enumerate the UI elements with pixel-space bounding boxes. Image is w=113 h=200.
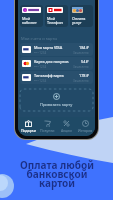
staticText: •••• 1234: [34, 65, 47, 69]
staticText: 178 ₽: [79, 73, 89, 78]
staticText: Мой Телефон: [47, 16, 63, 25]
button[interactable]: Акции: [57, 117, 76, 136]
button[interactable]: Привязать карту: [20, 89, 93, 111]
staticText: Привязать карту: [40, 102, 73, 107]
staticText: •••• 1234: [34, 51, 47, 55]
staticText: Покупки: [40, 128, 55, 133]
staticText: 184 ₽: [79, 45, 89, 50]
button[interactable]: Моя карта VISA: [20, 43, 93, 56]
button[interactable]: Тинькофф карта: [20, 71, 93, 84]
staticText: •••• 1234: [34, 79, 47, 83]
staticText: Мои счета и карты: [21, 36, 58, 41]
staticText: Подарки: [21, 128, 36, 133]
staticText: Зачислено: [73, 65, 89, 69]
staticText: Акции: [61, 128, 72, 133]
staticText: Тинькофф карта: [34, 73, 64, 78]
button[interactable]: Мой Телефон: [45, 5, 68, 27]
staticText: 54 ₽: [81, 59, 89, 64]
button[interactable]: Карта для покупок: [20, 57, 93, 70]
button[interactable]: История: [76, 117, 95, 136]
staticText: Мой кабинет: [22, 16, 37, 25]
staticText: Зачислено: [73, 79, 89, 83]
button[interactable]: Подарки: [18, 117, 38, 136]
staticText: Карта для покупок: [34, 59, 69, 64]
staticText: Оплата услуг: [72, 16, 86, 25]
staticText: Оплата любой банковской картой: [20, 158, 94, 190]
button[interactable]: Покупки: [38, 117, 57, 136]
staticText: Моя карта VISA: [34, 45, 63, 50]
staticText: История: [78, 128, 93, 133]
button[interactable]: Мой кабинет: [20, 5, 43, 27]
staticText: Зачислено: [73, 51, 89, 55]
button[interactable]: Оплата услуг: [70, 5, 93, 27]
